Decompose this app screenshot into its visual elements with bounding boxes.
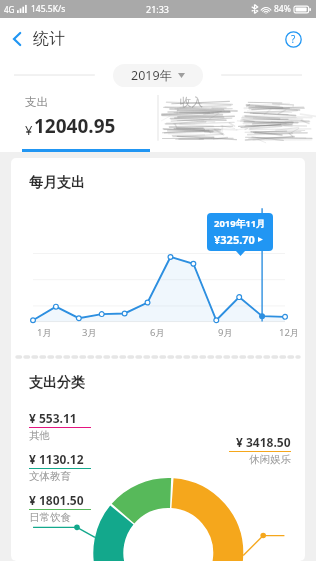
staticText: ? <box>291 32 296 46</box>
staticText: ¥ 1130.12 <box>29 451 84 467</box>
staticText: 每月支出 <box>29 174 85 192</box>
staticText: 6月 <box>150 326 165 339</box>
button[interactable]: 收入 <box>158 90 316 152</box>
other: Back <box>12 31 22 47</box>
staticText: ¥ <box>25 121 33 139</box>
staticText: 9月 <box>218 326 233 339</box>
button[interactable]: 2019年11月 <box>207 213 273 251</box>
staticText: 其他 <box>29 429 50 442</box>
button[interactable]: ¥ 1130.12 <box>29 451 91 483</box>
staticText: 统计 <box>33 29 65 49</box>
button[interactable] <box>11 192 305 354</box>
button[interactable]: Back <box>0 21 73 57</box>
staticText: 支出分类 <box>29 374 85 392</box>
staticText: 3月 <box>82 326 97 339</box>
staticText: 2019年11月 <box>214 217 266 230</box>
staticText: ¥ 553.11 <box>29 410 77 426</box>
staticText: 145.5K/s <box>31 3 66 15</box>
button[interactable]: Help <box>280 26 306 52</box>
staticText: 支出 <box>25 95 48 109</box>
staticText: 日常饮食 <box>29 511 71 524</box>
staticText: 4G <box>4 4 15 15</box>
staticText: ¥ 3418.50 <box>236 434 291 450</box>
button[interactable]: ¥ 3418.50 <box>229 434 291 466</box>
staticText: 1月 <box>37 326 52 339</box>
button[interactable]: 2019年 <box>113 64 203 87</box>
staticText: 休闲娱乐 <box>249 453 291 466</box>
staticText: ¥ 1801.50 <box>29 492 84 508</box>
button[interactable]: ¥ 1801.50 <box>29 492 91 524</box>
button[interactable]: 支出 <box>0 90 158 152</box>
staticText: 12040.95 <box>34 113 116 139</box>
staticText: 2019年 <box>131 67 173 84</box>
button[interactable]: ¥ 553.11 <box>29 410 91 442</box>
button[interactable] <box>11 400 305 561</box>
staticText: ¥325.70 <box>214 232 255 247</box>
staticText: 21:33 <box>146 3 170 15</box>
staticText: 84% <box>274 3 291 15</box>
staticText: 收入 <box>180 95 203 109</box>
staticText: 12月 <box>279 326 300 339</box>
staticText: 文体教育 <box>29 470 71 483</box>
